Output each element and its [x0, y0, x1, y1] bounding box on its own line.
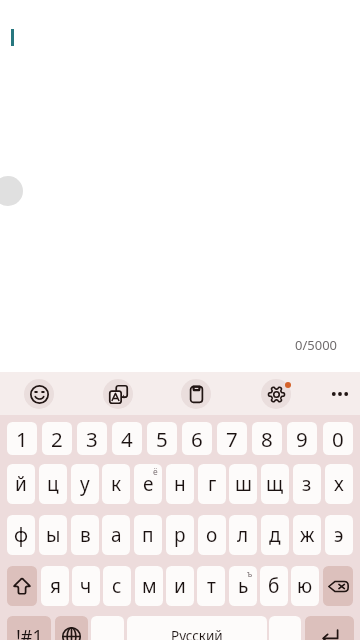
button[interactable]: 5	[147, 422, 177, 455]
staticText: в	[80, 522, 91, 548]
button[interactable]: shift	[7, 566, 37, 606]
staticText: м	[142, 573, 157, 599]
button[interactable]: 9	[287, 422, 317, 455]
button[interactable]: !#1	[7, 616, 51, 640]
button[interactable]: .	[269, 616, 301, 640]
button[interactable]: globe	[55, 616, 88, 640]
button[interactable]: б	[260, 566, 288, 606]
staticText: т	[207, 573, 216, 599]
button[interactable]: backspace	[323, 566, 353, 606]
button[interactable]: 3	[77, 422, 107, 455]
button[interactable]: 4	[112, 422, 142, 455]
button[interactable]: 8	[252, 422, 282, 455]
staticText: х	[334, 471, 344, 497]
staticText: ъ	[247, 568, 253, 580]
staticText: э	[334, 522, 344, 548]
button[interactable]: ю	[291, 566, 319, 606]
button[interactable]: л	[229, 515, 257, 555]
button[interactable]: я	[41, 566, 69, 606]
button[interactable]: с	[103, 566, 131, 606]
staticText: с	[112, 573, 122, 599]
staticText: ё	[153, 466, 158, 478]
button[interactable]: э	[325, 515, 353, 555]
button[interactable]: а	[102, 515, 130, 555]
staticText: ч	[80, 573, 92, 599]
button[interactable]: й	[7, 464, 35, 504]
button[interactable]: ы	[39, 515, 67, 555]
staticText: н	[174, 471, 186, 497]
button[interactable]: т	[197, 566, 225, 606]
staticText: к	[111, 471, 122, 497]
staticText: 5	[156, 425, 168, 453]
staticText: й	[15, 471, 27, 497]
button[interactable]: Emoji	[24, 379, 54, 409]
staticText: 3	[86, 425, 98, 453]
button[interactable]: Clipboard	[181, 379, 211, 409]
button[interactable]: ч	[72, 566, 100, 606]
staticText: п	[142, 522, 154, 548]
staticText: д	[269, 522, 281, 548]
staticText: ы	[46, 522, 61, 548]
staticText: 4	[121, 425, 133, 453]
button[interactable]: ь	[229, 566, 257, 606]
button[interactable]: м	[135, 566, 163, 606]
button[interactable]: Translate	[103, 379, 133, 409]
button[interactable]: е	[134, 464, 162, 504]
button[interactable]: ф	[7, 515, 35, 555]
staticText: л	[237, 522, 249, 548]
button[interactable]: 7	[217, 422, 247, 455]
staticText: 7	[226, 425, 238, 453]
staticText: 2	[51, 425, 63, 453]
staticText: р	[174, 522, 186, 548]
button[interactable]: г	[198, 464, 226, 504]
button[interactable]: enter	[305, 616, 354, 640]
staticText: о	[206, 522, 218, 548]
staticText: щ	[266, 471, 284, 497]
button[interactable]: More options	[325, 379, 355, 409]
staticText: и	[174, 573, 186, 599]
staticText: е	[143, 471, 154, 497]
button[interactable]: 0	[323, 422, 353, 455]
staticText: ф	[14, 522, 29, 548]
staticText: 1	[16, 425, 28, 453]
button[interactable]: 6	[182, 422, 212, 455]
staticText: ц	[47, 471, 59, 497]
staticText: 8	[261, 425, 273, 453]
button[interactable]: ,	[91, 616, 124, 640]
button[interactable]: в	[71, 515, 99, 555]
staticText: г	[208, 471, 217, 497]
button[interactable]: з	[293, 464, 321, 504]
button[interactable]: 2	[42, 422, 72, 455]
button[interactable]: щ	[261, 464, 289, 504]
staticText: 9	[296, 425, 308, 453]
staticText: з	[302, 471, 312, 497]
button[interactable]: ш	[229, 464, 257, 504]
button[interactable]: х	[325, 464, 353, 504]
staticText: 0	[332, 425, 344, 453]
button[interactable]: у	[71, 464, 99, 504]
button[interactable]: Русский	[127, 616, 267, 640]
staticText: б	[268, 573, 280, 599]
staticText: Русский	[171, 627, 223, 640]
staticText: ь	[238, 573, 249, 599]
staticText: я	[50, 573, 61, 599]
button[interactable]: р	[166, 515, 194, 555]
staticText: ж	[300, 522, 315, 548]
button[interactable]: д	[261, 515, 289, 555]
staticText: ш	[235, 471, 252, 497]
button[interactable]: ц	[39, 464, 67, 504]
staticText: 6	[191, 425, 203, 453]
staticText: !#1	[16, 624, 43, 640]
button[interactable]: Settings	[261, 379, 291, 409]
button[interactable]: о	[198, 515, 226, 555]
button[interactable]: 1	[7, 422, 37, 455]
button[interactable]: ж	[293, 515, 321, 555]
button[interactable]: н	[166, 464, 194, 504]
button[interactable]: п	[134, 515, 162, 555]
button[interactable]: и	[166, 566, 194, 606]
staticText: ю	[297, 573, 313, 599]
button[interactable]: к	[102, 464, 130, 504]
staticText: 0/5000	[295, 336, 338, 354]
